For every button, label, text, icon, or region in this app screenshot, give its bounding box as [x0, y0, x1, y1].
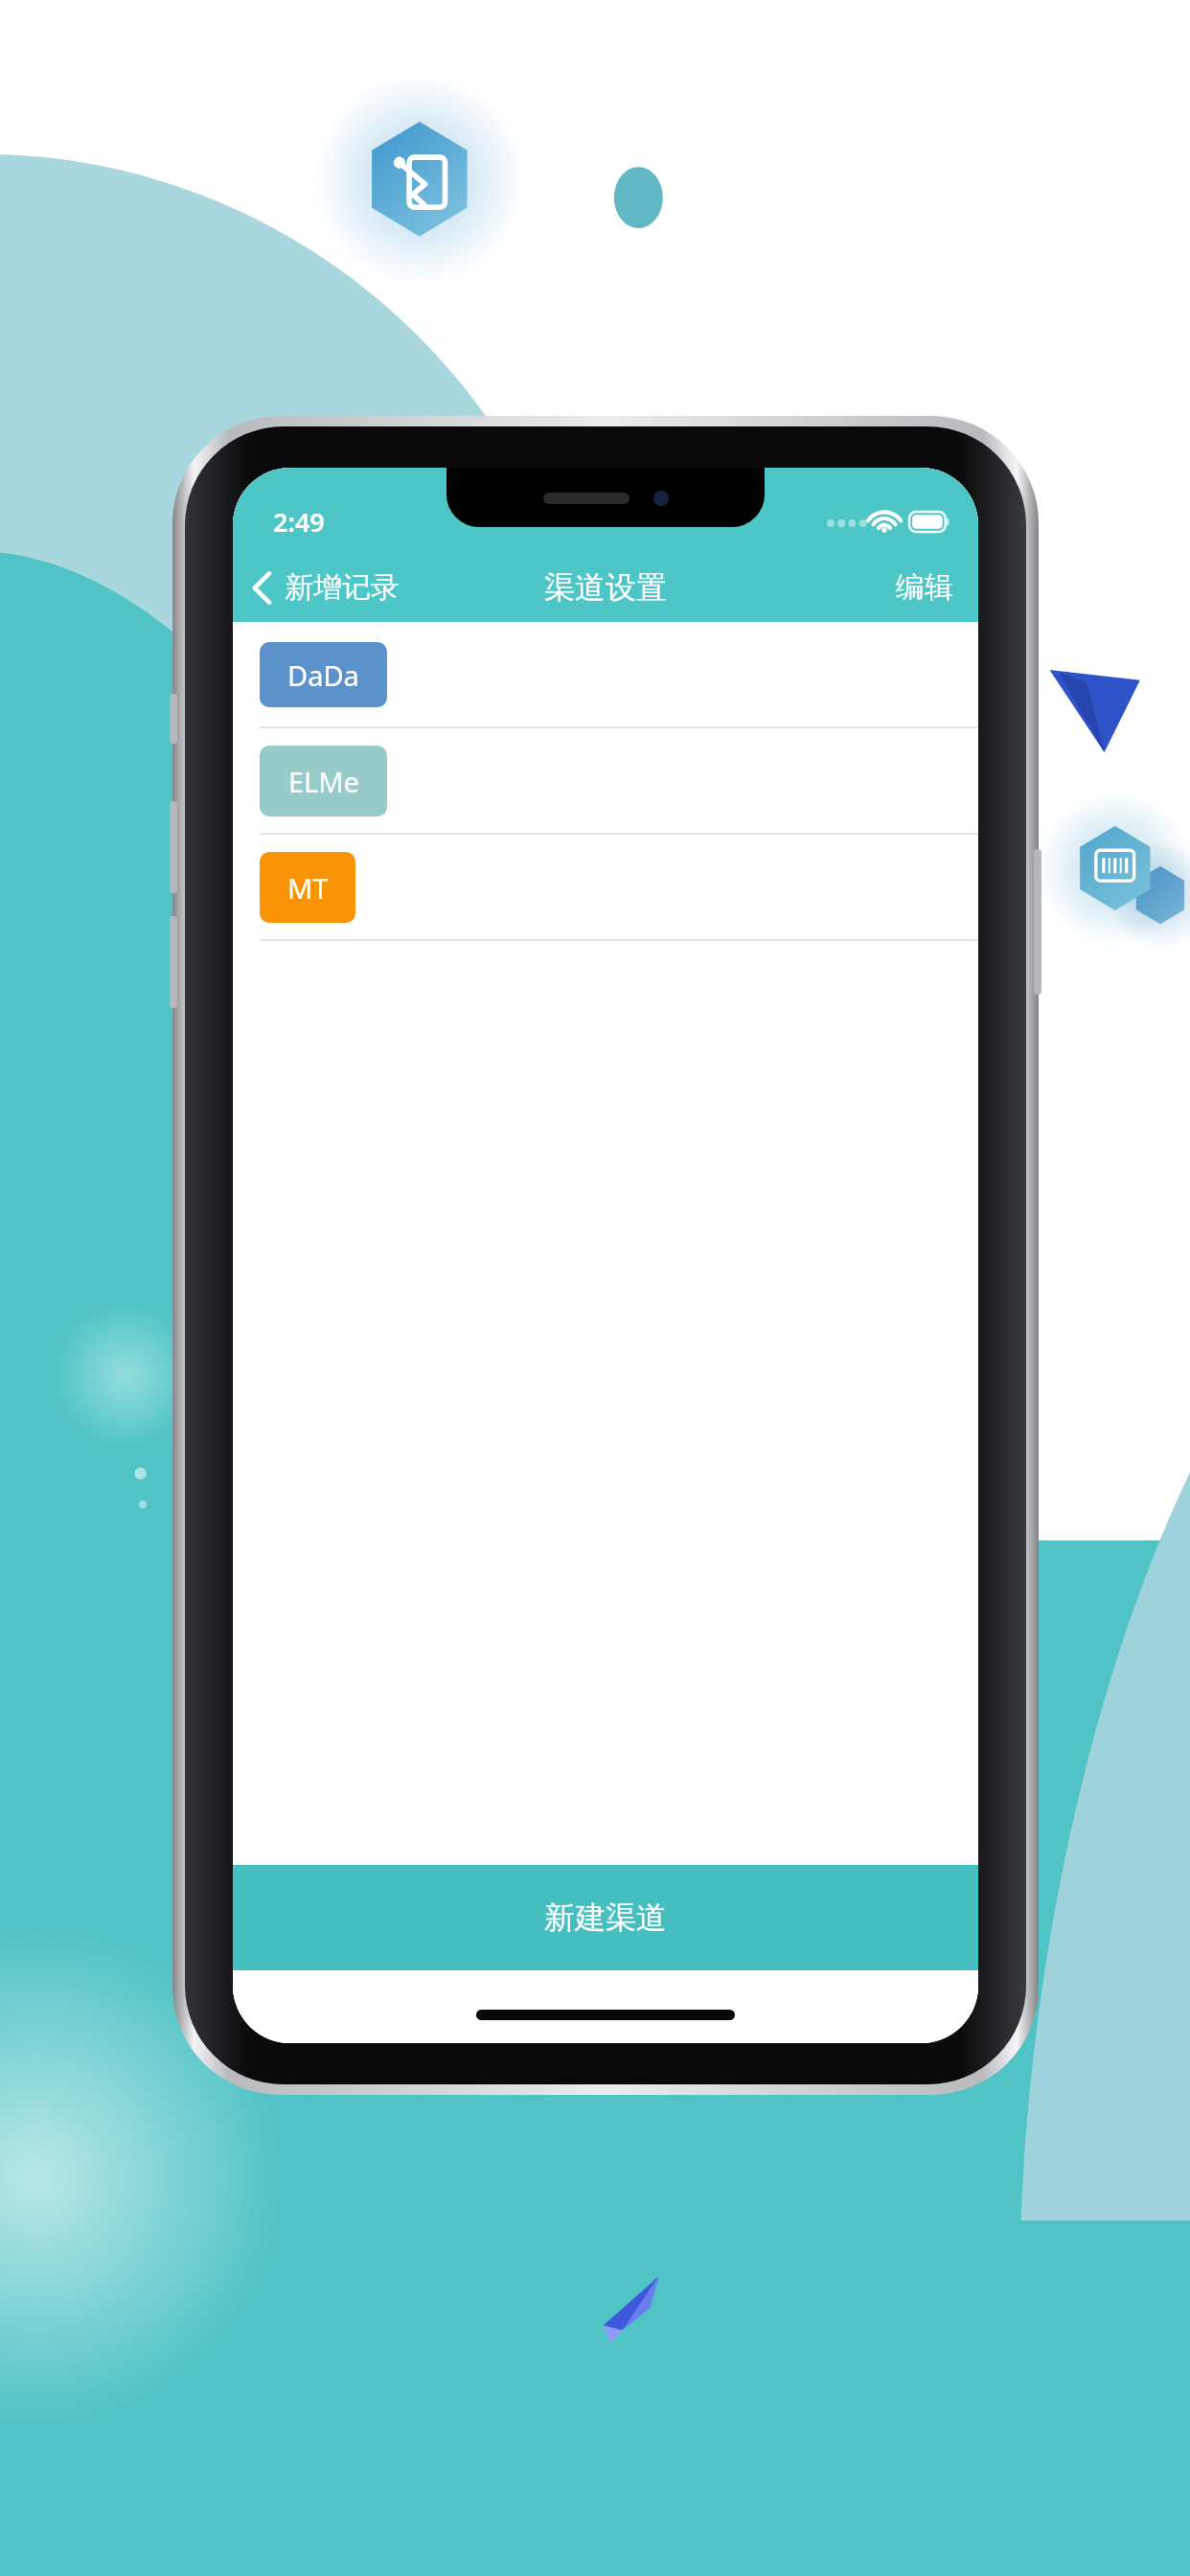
staticText: DaDa: [287, 656, 359, 694]
button[interactable]: DaDa: [233, 622, 978, 728]
button[interactable]: MT: [233, 835, 978, 941]
staticText: 2:49: [273, 504, 325, 540]
staticText: MT: [287, 869, 329, 907]
button[interactable]: 新建渠道: [233, 1865, 978, 1970]
button[interactable]: 编辑: [871, 558, 978, 617]
staticText: 新增记录: [285, 569, 400, 606]
staticText: 渠道设置: [544, 568, 667, 607]
other: Back: [252, 571, 272, 605]
staticText: 编辑: [896, 569, 953, 606]
staticText: ELMe: [288, 763, 359, 800]
button[interactable]: Back: [233, 560, 415, 615]
button[interactable]: ELMe: [233, 728, 978, 835]
staticText: 新建渠道: [544, 1898, 667, 1937]
